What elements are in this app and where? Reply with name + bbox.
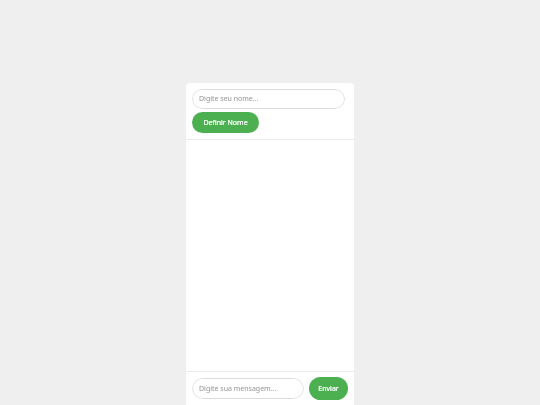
- button[interactable]: Definir Nome: [192, 112, 259, 133]
- button[interactable]: Digite seu nome...: [192, 89, 345, 109]
- staticText: Enviar: [318, 384, 339, 394]
- staticText: Digite sua mensagem...: [199, 384, 277, 394]
- button[interactable]: Digite sua mensagem...: [192, 378, 304, 399]
- staticText: Definir Nome: [203, 118, 248, 128]
- staticText: Digite seu nome...: [199, 94, 259, 104]
- button[interactable]: Enviar: [309, 377, 348, 400]
